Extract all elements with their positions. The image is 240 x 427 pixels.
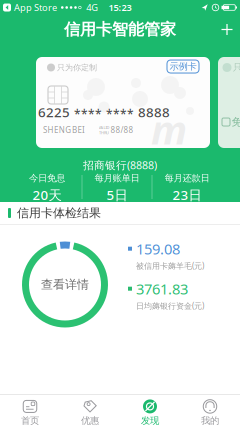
staticText: VALID [98, 125, 109, 130]
staticText: 我的 [201, 415, 219, 426]
staticText: 查看详情 [41, 277, 89, 292]
staticText: **** [106, 106, 134, 122]
staticText: 5日 [106, 186, 127, 204]
staticText: 今日免息 [29, 172, 65, 184]
staticText: 4G [86, 1, 98, 14]
staticText: 6225 [38, 103, 70, 121]
staticText: 只为你定制 [57, 63, 97, 72]
staticText: m [151, 102, 187, 155]
button[interactable]: 发现 [120, 395, 180, 427]
staticText: 每月还款日 [164, 172, 209, 184]
button[interactable]: Next card [218, 57, 240, 148]
staticText: 只为 [233, 62, 240, 73]
staticText: THRU [99, 130, 109, 135]
staticText: 信用卡体检结果 [17, 206, 101, 220]
staticText: 免 [231, 115, 240, 128]
staticText: 20天 [32, 186, 61, 204]
staticText: 被信用卡薅羊毛(元) [136, 260, 204, 271]
staticText: 23日 [172, 186, 201, 204]
button[interactable]: 查看详情 [22, 241, 108, 327]
button[interactable]: 首页 [0, 395, 60, 427]
staticText: 示例卡 [169, 61, 196, 72]
staticText: 发现 [141, 415, 159, 426]
staticText: 3761.83 [136, 279, 188, 298]
staticText: **** [74, 106, 102, 122]
staticText: 88/88 [110, 125, 133, 135]
button[interactable]: 优惠 [60, 395, 120, 427]
staticText: 159.08 [136, 239, 180, 258]
staticText: 15:23 [108, 1, 131, 14]
button[interactable]: 我的 [180, 395, 240, 427]
staticText: 日均薅银行资金(元) [136, 300, 204, 311]
staticText: 每月账单日 [94, 172, 139, 184]
staticText: SHENGBEI [43, 125, 85, 135]
staticText: 首页 [21, 415, 39, 426]
staticText: 优惠 [81, 415, 99, 426]
staticText: 信用卡智能管家 [64, 20, 176, 39]
button[interactable]: Add card [215, 17, 239, 41]
staticText: 招商银行(8888) [83, 158, 157, 172]
staticText: 8888 [138, 103, 170, 121]
button[interactable]: 只为你定制 [36, 57, 210, 148]
staticText: App Store [14, 1, 57, 14]
